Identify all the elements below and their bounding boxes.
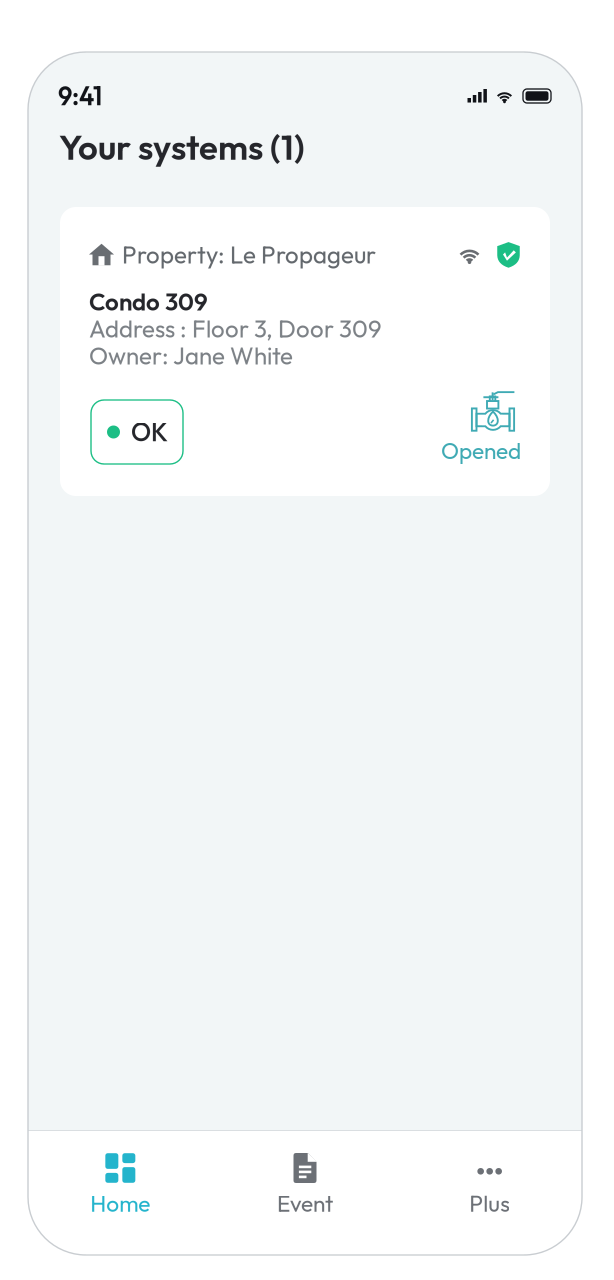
button[interactable]: Event: [213, 1131, 397, 1255]
staticText: Your systems (1): [59, 125, 305, 169]
staticText: Opened: [441, 436, 521, 465]
button[interactable]: Home: [28, 1131, 213, 1255]
staticText: Owner: Jane White: [89, 340, 293, 371]
staticText: Plus: [469, 1189, 510, 1218]
staticText: Property: Le Propageur: [122, 239, 376, 270]
staticText: OK: [131, 416, 168, 448]
button[interactable]: Plus: [397, 1131, 582, 1255]
button[interactable]: OK: [91, 400, 183, 464]
staticText: 9:41: [58, 80, 102, 112]
staticText: Home: [90, 1189, 150, 1218]
button[interactable]: Opened: [352, 391, 521, 465]
staticText: Address : Floor 3, Door 309: [89, 313, 382, 344]
staticText: Event: [277, 1189, 333, 1218]
staticText: Condo 309: [89, 286, 208, 317]
